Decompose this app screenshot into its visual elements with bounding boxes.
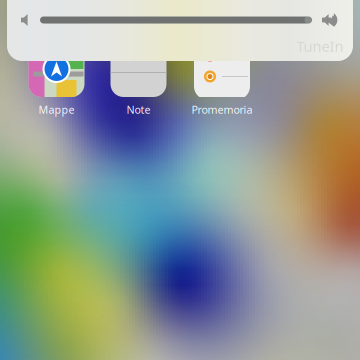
button[interactable]: Promemoria — [178, 0, 266, 120]
staticText: Mappe — [38, 102, 74, 117]
staticText: Promemoria — [191, 102, 252, 117]
button[interactable]: Mappe — [12, 0, 100, 120]
staticText: TuneIn — [296, 36, 343, 56]
button[interactable]: Note — [94, 0, 182, 120]
staticText: Note — [126, 102, 150, 117]
